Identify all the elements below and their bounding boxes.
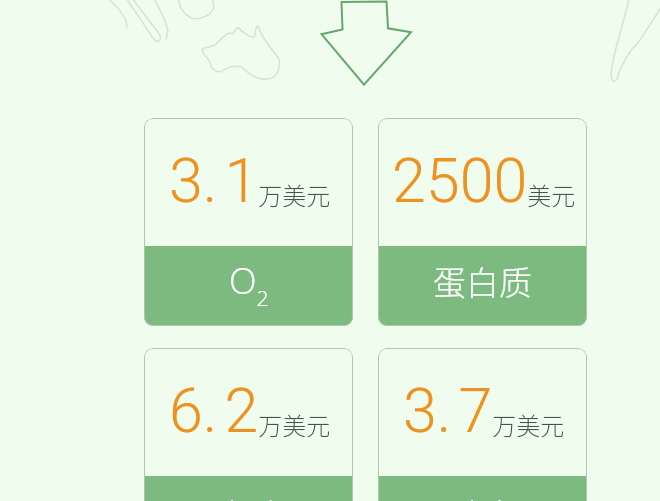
staticText: 蛋白质 xyxy=(433,257,532,305)
staticText: 2500美元 xyxy=(392,145,576,216)
staticText: O2 xyxy=(229,256,269,312)
button[interactable]: 3.7万美元 xyxy=(378,348,587,501)
staticText: 脂肪 xyxy=(216,490,282,501)
staticText: 3.1万美元 xyxy=(169,145,331,216)
button[interactable]: 6.2万美元 xyxy=(144,348,353,501)
button[interactable]: 3.1万美元 xyxy=(144,118,353,326)
staticText: 碳水 xyxy=(450,490,516,501)
staticText: 3.7万美元 xyxy=(403,375,565,446)
staticText: 6.2万美元 xyxy=(169,375,331,446)
button[interactable]: 2500美元 xyxy=(378,118,587,326)
